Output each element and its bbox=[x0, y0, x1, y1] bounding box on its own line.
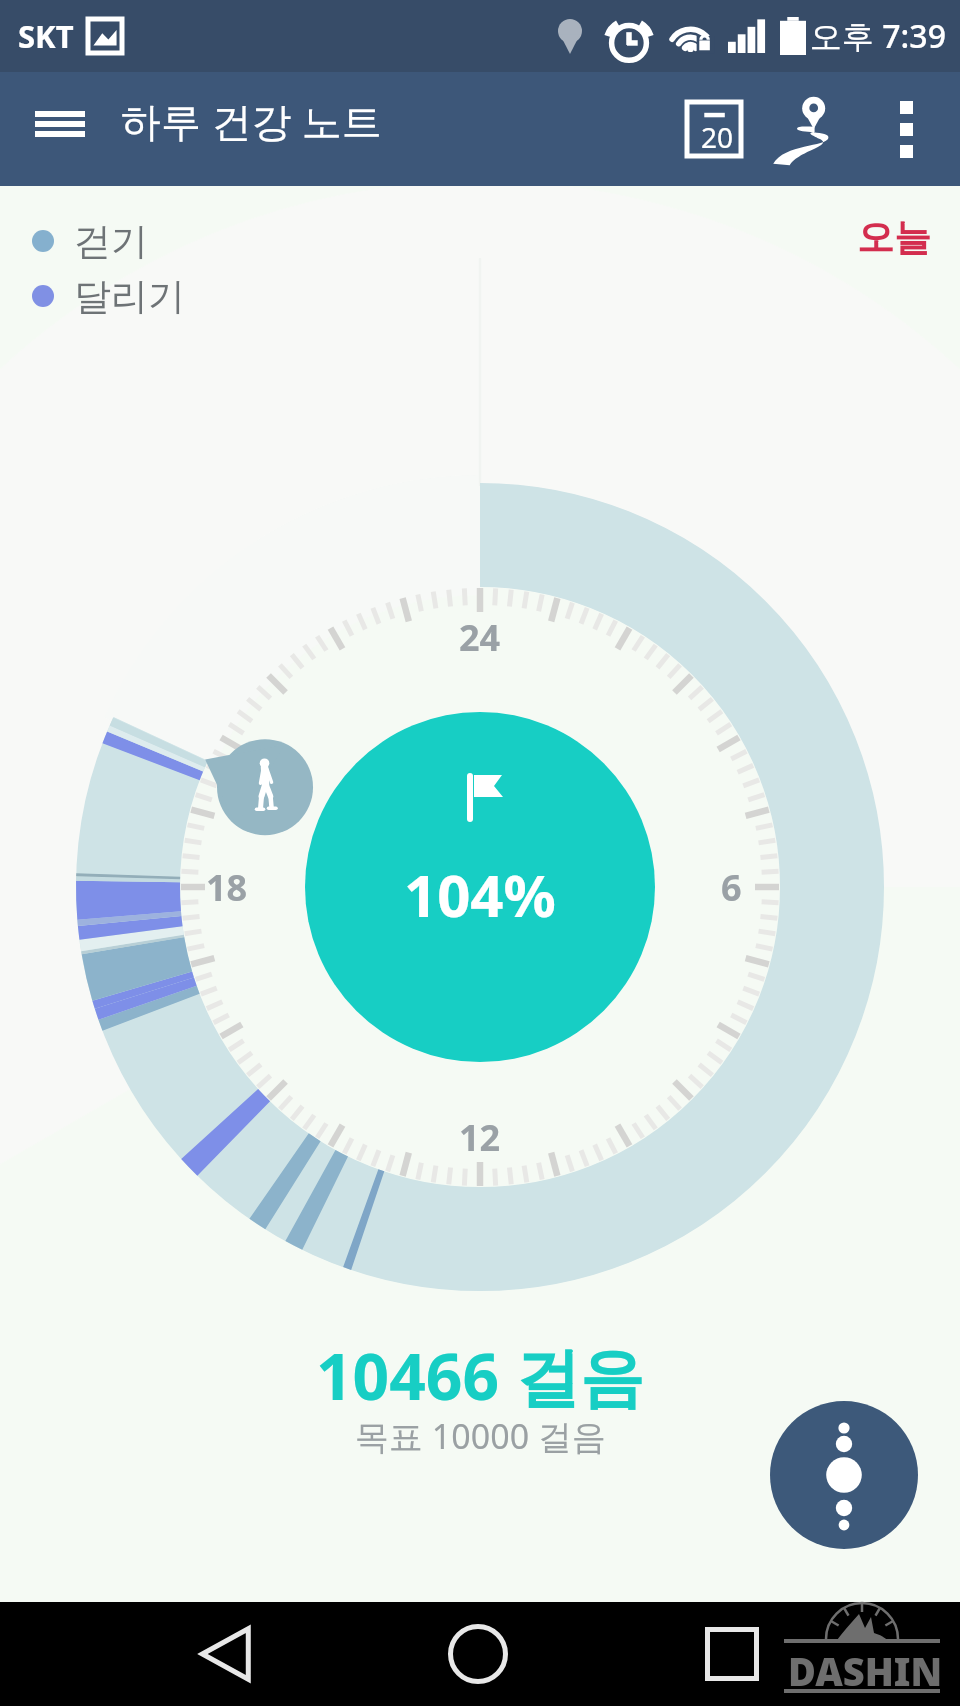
button[interactable]: Back bbox=[179, 1602, 275, 1706]
button[interactable]: 달리기 bbox=[32, 269, 185, 323]
staticText: 6 bbox=[721, 863, 742, 911]
staticText: 18 bbox=[206, 863, 248, 911]
button[interactable]: Menu bbox=[20, 84, 100, 164]
button[interactable]: Home bbox=[430, 1602, 526, 1706]
staticText: 24 bbox=[459, 613, 501, 661]
button[interactable]: Route bbox=[762, 81, 858, 177]
button[interactable]: 걷기 bbox=[32, 214, 148, 268]
staticText: 20 bbox=[701, 118, 734, 156]
staticText: 하루 건강 노트 bbox=[121, 93, 382, 148]
staticText: 오후 7:39 bbox=[810, 14, 946, 58]
staticText: 12 bbox=[459, 1113, 501, 1161]
button[interactable]: More options bbox=[858, 81, 954, 177]
button[interactable]: More actions bbox=[770, 1401, 918, 1549]
button[interactable]: Recents bbox=[684, 1602, 780, 1706]
staticText: 104% bbox=[404, 855, 556, 934]
staticText: 걷기 bbox=[74, 218, 148, 265]
staticText: SKT bbox=[18, 15, 74, 57]
button[interactable]: 오늘 bbox=[844, 194, 944, 280]
staticText: 오늘 bbox=[857, 214, 931, 261]
staticText: 목표 10000 걸음 bbox=[355, 1413, 606, 1459]
staticText: 달리기 bbox=[74, 273, 185, 320]
staticText: 10466 걸음 bbox=[316, 1332, 644, 1419]
button[interactable]: Calendar 20 bbox=[666, 81, 762, 177]
staticText: DASHIN bbox=[788, 1645, 943, 1697]
